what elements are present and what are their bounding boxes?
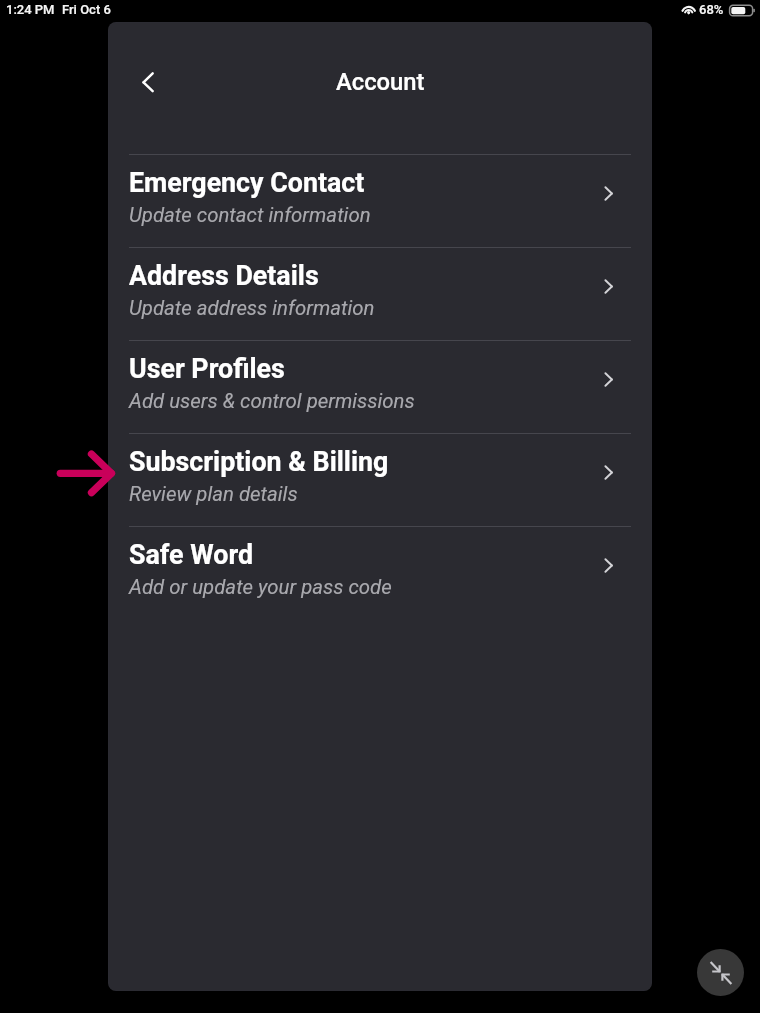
button[interactable]: Emergency Contact [108, 155, 652, 247]
button[interactable]: Subscription & Billing [108, 434, 652, 526]
staticText: Emergency Contact [129, 167, 365, 198]
button[interactable]: Collapse [697, 949, 744, 996]
staticText: 1:24 PM [6, 2, 55, 17]
staticText: Address Details [129, 260, 319, 291]
staticText: Add or update your pass code [129, 575, 392, 599]
staticText: User Profiles [129, 353, 285, 384]
staticText: Update address information [129, 296, 375, 320]
button[interactable]: User Profiles [108, 341, 652, 433]
button[interactable]: Address Details [108, 248, 652, 340]
staticText: Review plan details [129, 482, 298, 506]
staticText: Safe Word [129, 539, 254, 570]
staticText: Add users & control permissions [129, 389, 415, 413]
staticText: Subscription & Billing [129, 446, 389, 477]
staticText: 68% [699, 2, 724, 17]
button[interactable]: Back [127, 60, 171, 104]
staticText: Update contact information [129, 203, 371, 227]
staticText: Account [336, 68, 425, 96]
button[interactable]: Safe Word [108, 527, 652, 619]
staticText: Fri Oct 6 [62, 2, 111, 17]
